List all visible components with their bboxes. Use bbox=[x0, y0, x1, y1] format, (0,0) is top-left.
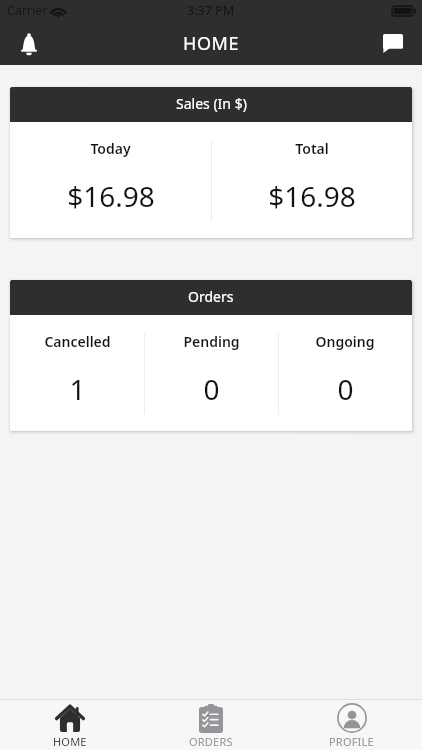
staticText: 3:37 PM bbox=[187, 2, 235, 19]
staticText: PROFILE bbox=[329, 734, 374, 749]
button[interactable]: Notifications bbox=[0, 22, 58, 65]
staticText: 1 bbox=[69, 370, 86, 408]
staticText: HOME bbox=[183, 31, 240, 56]
staticText: Carrier bbox=[7, 2, 48, 19]
staticText: 0 bbox=[337, 370, 354, 408]
staticText: $16.98 bbox=[67, 177, 155, 215]
staticText: Cancelled bbox=[44, 332, 111, 351]
button[interactable]: ORDERS bbox=[140, 700, 281, 750]
staticText: Ongoing bbox=[315, 332, 375, 351]
staticText: Sales (In $) bbox=[176, 94, 247, 113]
button[interactable]: HOME bbox=[0, 700, 140, 750]
staticText: Total bbox=[295, 139, 329, 158]
staticText: Today bbox=[90, 139, 131, 158]
button[interactable]: Messages bbox=[364, 22, 422, 65]
staticText: HOME bbox=[53, 734, 87, 749]
staticText: Pending bbox=[183, 332, 240, 351]
staticText: 0 bbox=[203, 370, 220, 408]
button[interactable]: PROFILE bbox=[281, 700, 422, 750]
staticText: Orders bbox=[188, 287, 234, 306]
staticText: $16.98 bbox=[268, 177, 356, 215]
staticText: ORDERS bbox=[189, 734, 233, 749]
